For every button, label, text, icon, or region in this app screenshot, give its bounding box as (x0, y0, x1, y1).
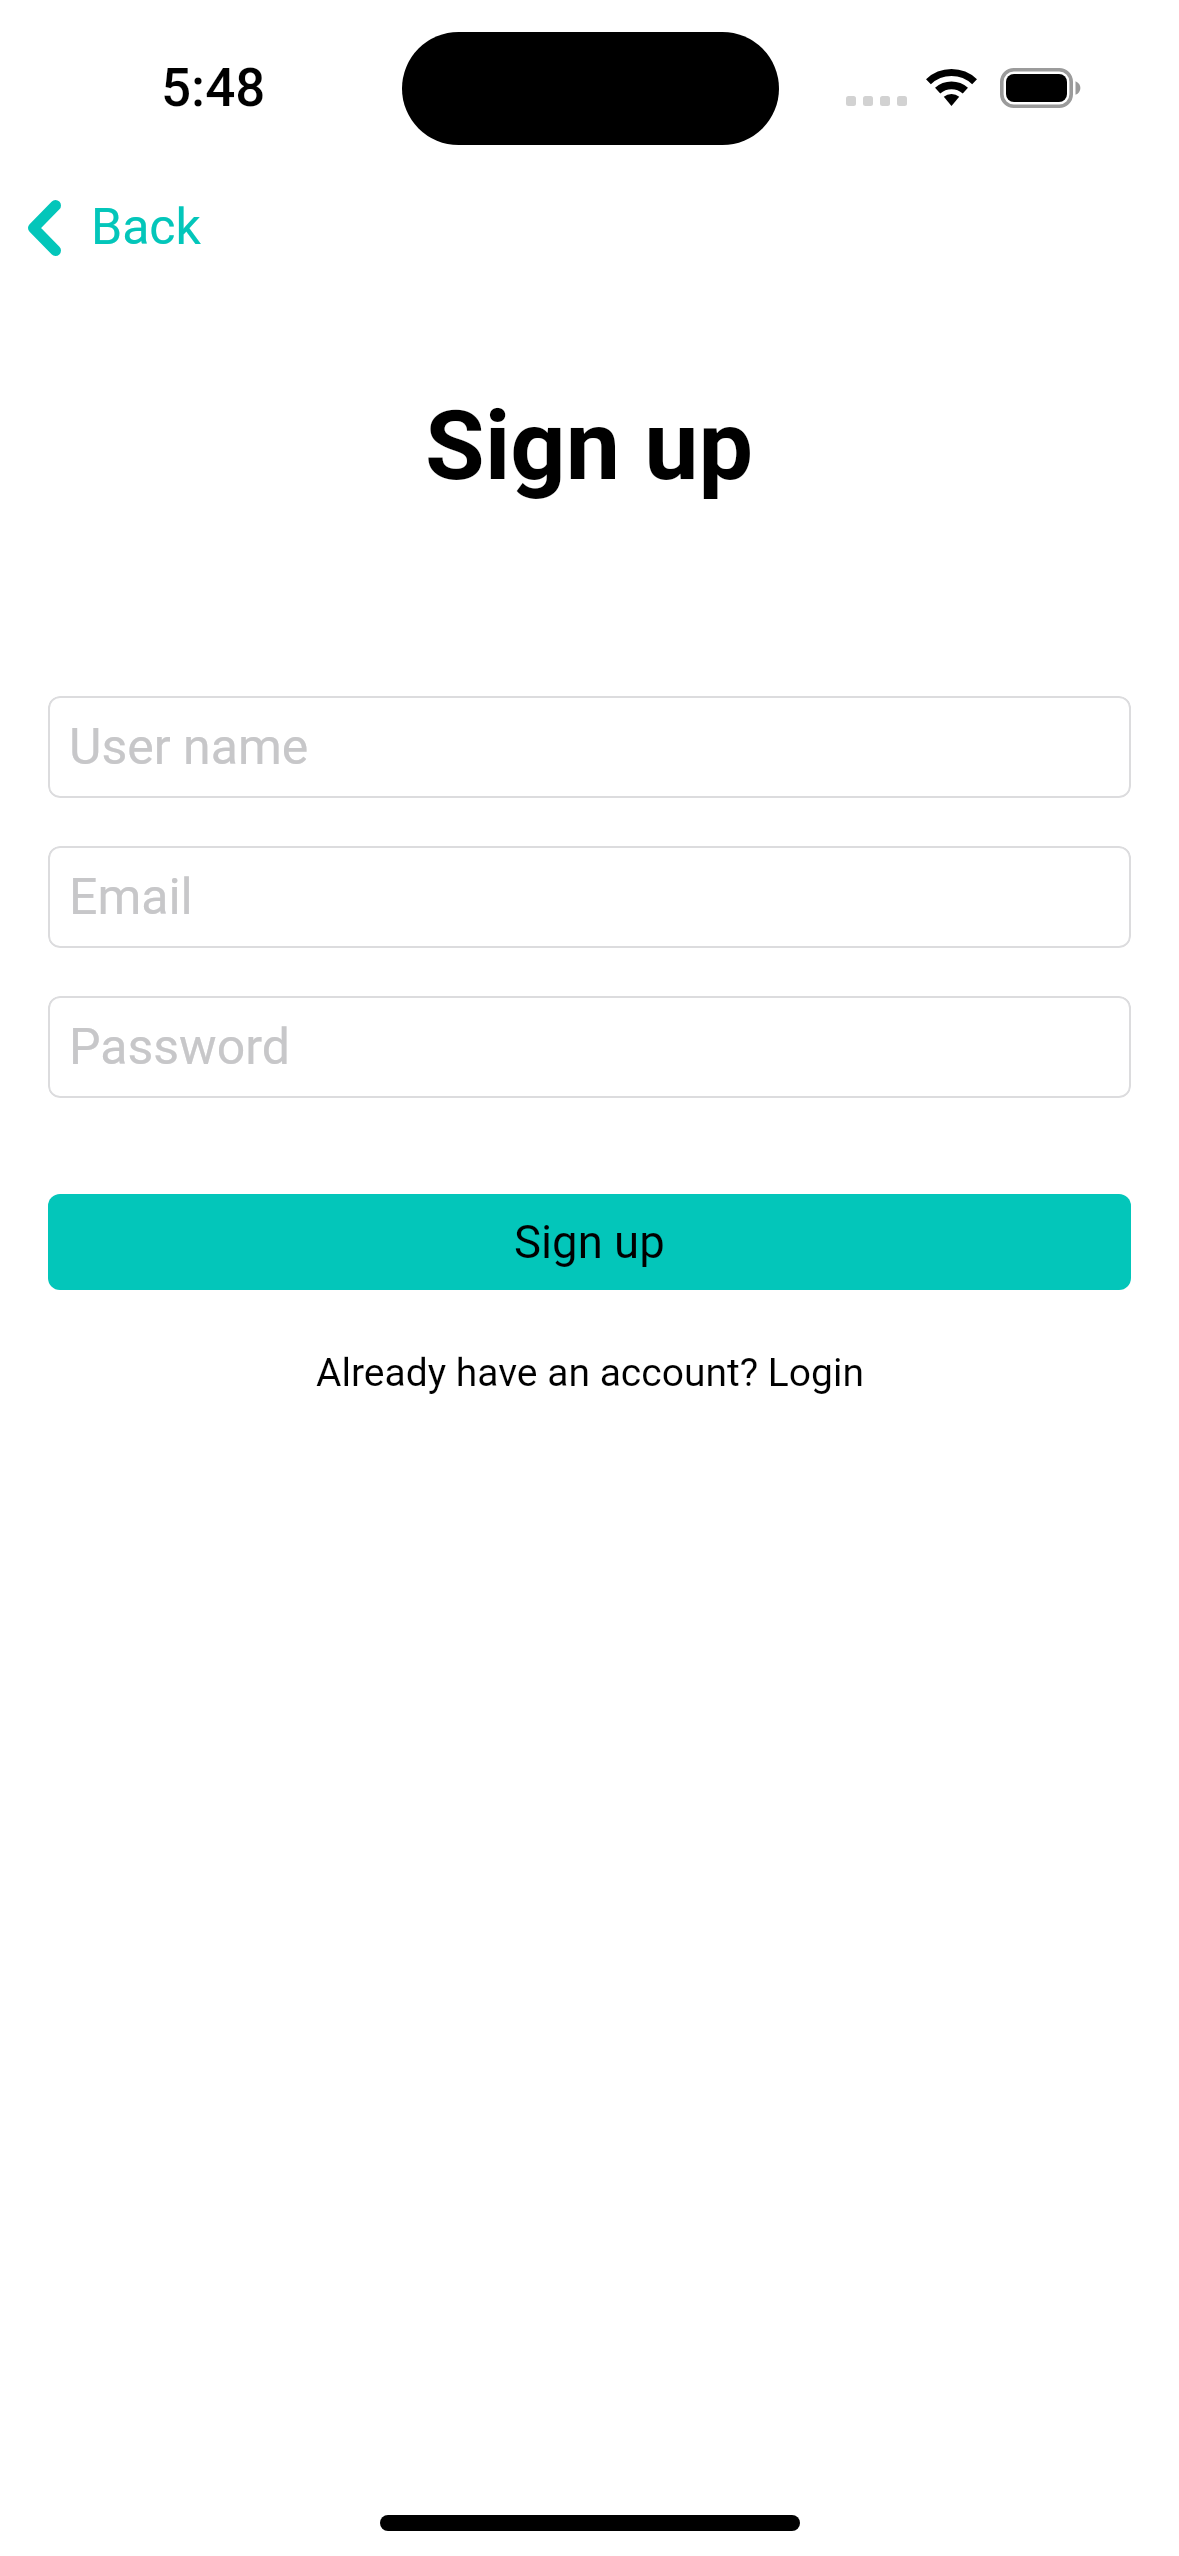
staticText: Password (69, 1018, 290, 1077)
staticText: Back (91, 198, 201, 257)
staticText: 5:48 (161, 57, 266, 119)
button[interactable]: Back (10, 182, 219, 273)
staticText: Sign up (514, 1216, 665, 1269)
button[interactable]: Password (48, 996, 1131, 1098)
staticText: Already have an account? Login (316, 1350, 864, 1396)
staticText: Email (69, 868, 193, 927)
staticText: User name (69, 718, 309, 777)
staticText: Sign up (425, 389, 754, 503)
button[interactable]: Sign up (48, 1194, 1131, 1290)
button[interactable]: Already have an account? Login (300, 1334, 880, 1412)
button[interactable]: Email (48, 846, 1131, 948)
button[interactable]: User name (48, 696, 1131, 798)
